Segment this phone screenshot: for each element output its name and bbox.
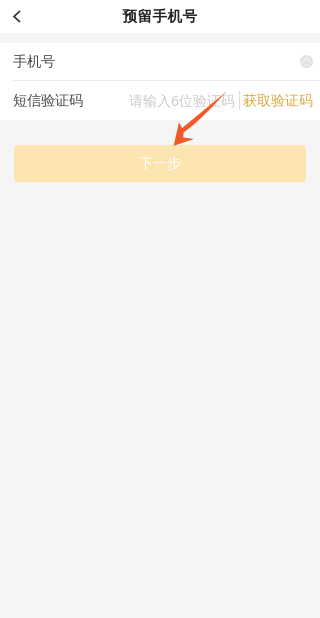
button[interactable]: 手机号 <box>0 43 320 80</box>
button[interactable]: 获取验证码 <box>240 81 320 120</box>
staticText: 获取验证码 <box>243 92 313 109</box>
button[interactable]: 下一步 <box>14 145 306 182</box>
staticText: 短信验证码 <box>13 91 83 109</box>
button[interactable]: Back <box>0 0 44 33</box>
staticText: 预留手机号 <box>122 7 197 26</box>
staticText: 下一步 <box>139 155 181 172</box>
staticText: 请输入6位验证码 <box>129 91 235 110</box>
staticText: 手机号 <box>13 52 55 70</box>
